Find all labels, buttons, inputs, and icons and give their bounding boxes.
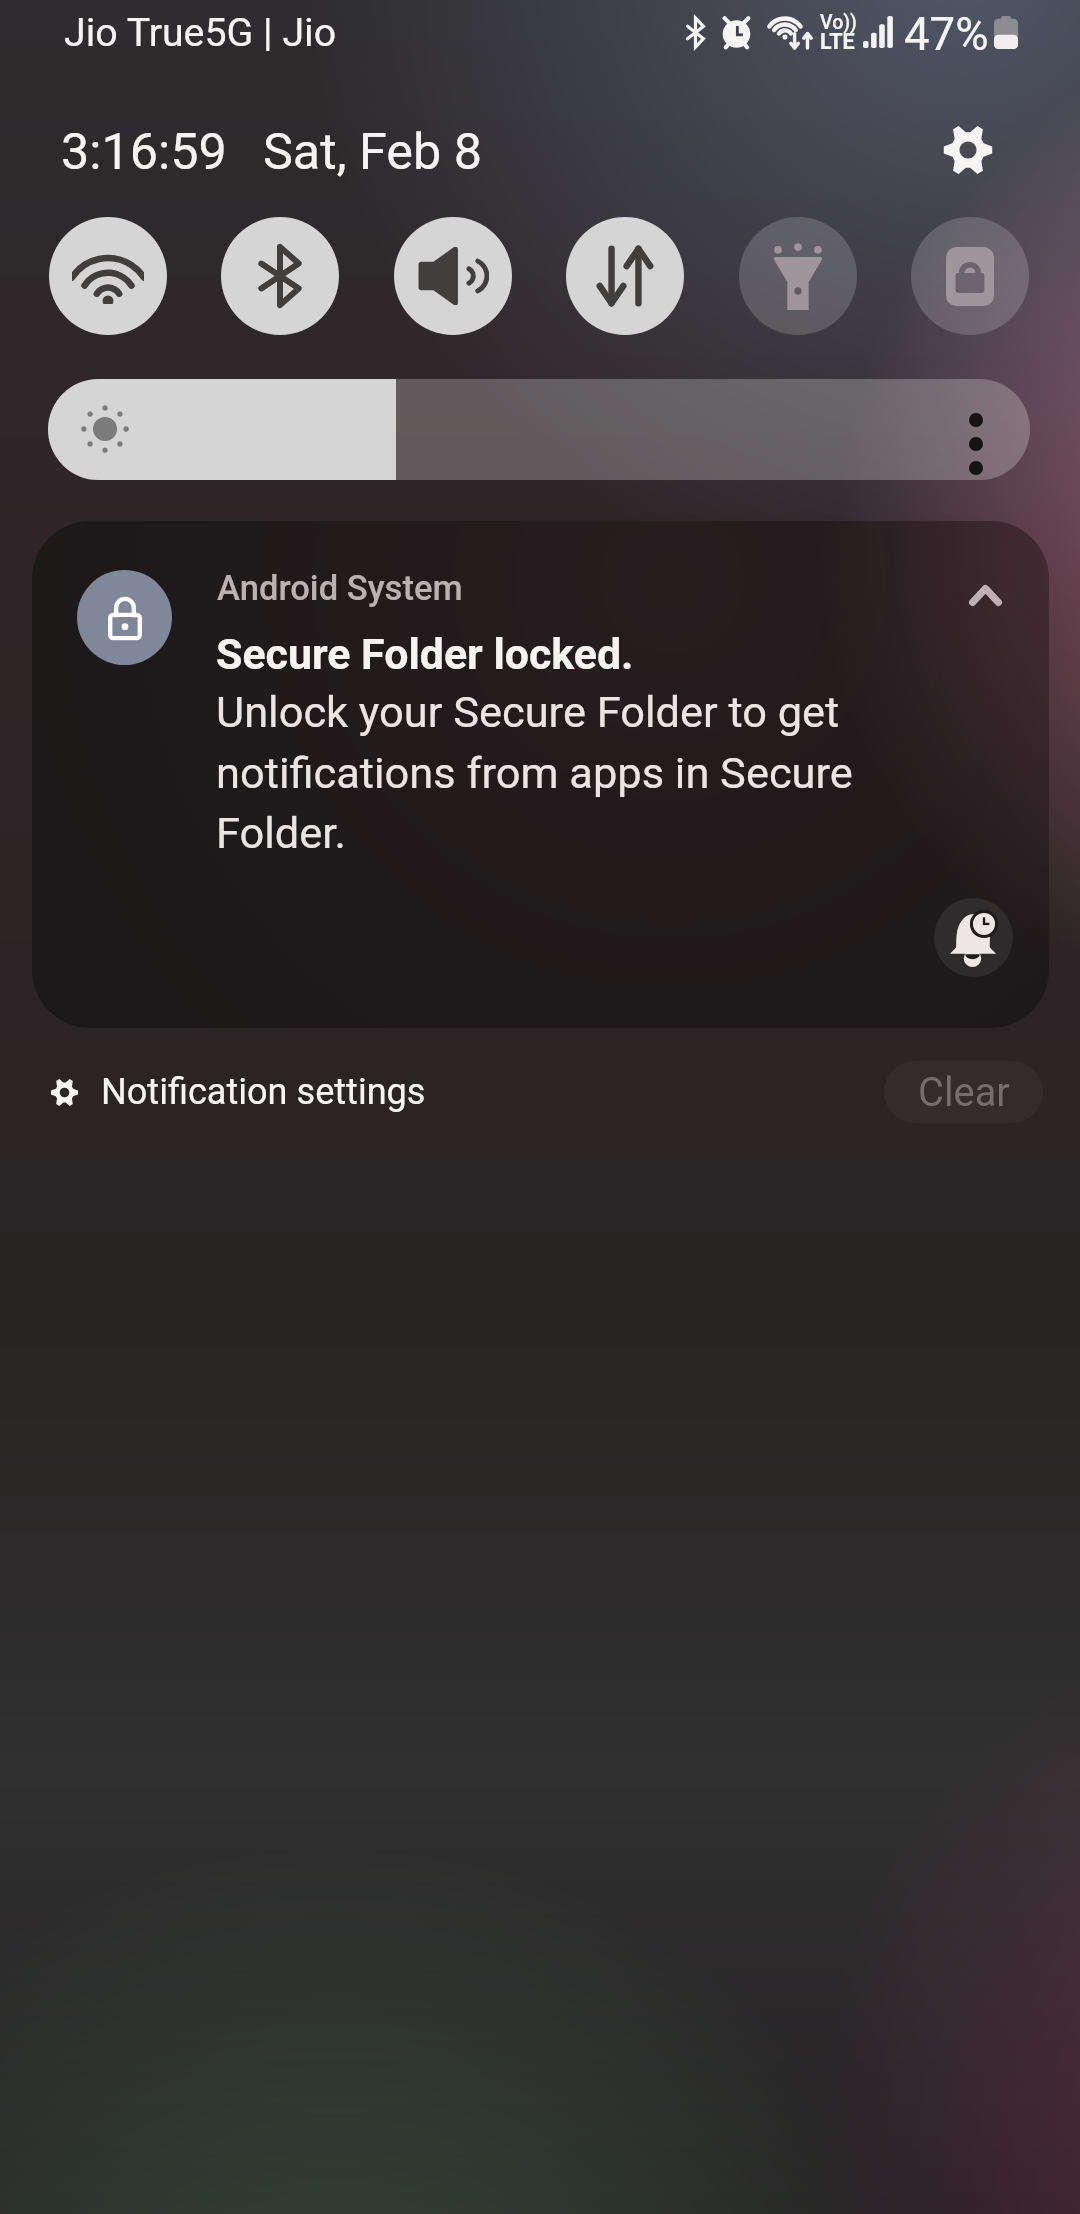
staticText: LTE	[820, 29, 855, 54]
button[interactable]: Collapse	[937, 547, 1033, 643]
button[interactable]: Sound	[394, 217, 512, 335]
staticText: Clear	[918, 1069, 1010, 1116]
button[interactable]: Clear	[884, 1061, 1043, 1123]
button[interactable]: Flashlight	[739, 217, 857, 335]
staticText: Sat, Feb 8	[263, 122, 482, 181]
button[interactable]: Wi-Fi	[49, 217, 167, 335]
button[interactable]: Snooze	[934, 898, 1013, 977]
button[interactable]: Android System	[32, 521, 1049, 1028]
staticText: Vo))	[820, 11, 857, 34]
button[interactable]: Notification settings	[0, 1057, 450, 1127]
staticText: 47%	[904, 8, 989, 61]
staticText: Unlock your Secure Folder to get notific…	[216, 687, 906, 858]
button[interactable]: Secure Folder	[911, 217, 1029, 335]
staticText: 3:16:59	[61, 122, 227, 181]
button[interactable]: Bluetooth	[221, 217, 339, 335]
staticText: Secure Folder locked.	[216, 629, 634, 679]
staticText: Notification settings	[101, 1071, 426, 1113]
staticText: Android System	[217, 568, 463, 609]
button[interactable]: Brightness	[48, 379, 1030, 480]
button[interactable]: Mobile data	[566, 217, 684, 335]
staticText: Jio True5G | Jio	[64, 10, 337, 56]
button[interactable]: Settings	[919, 101, 1017, 199]
